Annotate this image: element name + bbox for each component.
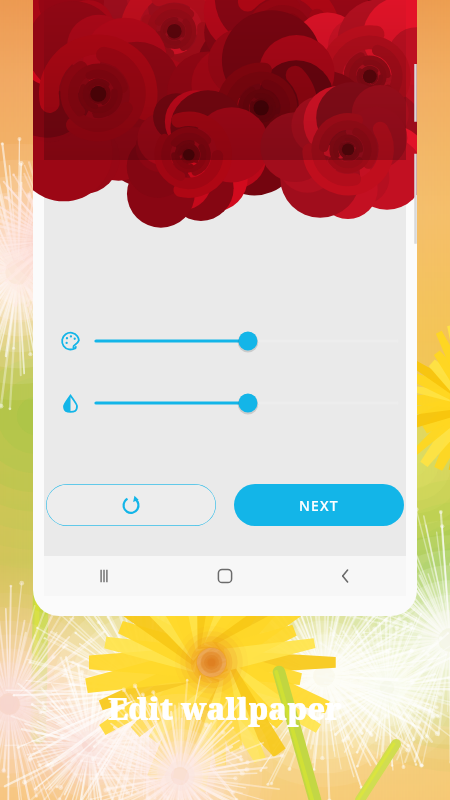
button[interactable]: Reset [46,484,216,526]
button[interactable]: Home [164,557,285,595]
button[interactable]: Color [53,324,87,358]
button[interactable]: Contrast [53,386,87,420]
button[interactable]: NEXT [234,484,404,526]
button[interactable]: Back [285,557,406,595]
staticText: NEXT [299,496,339,515]
button[interactable] [96,326,397,356]
button[interactable]: Recents [44,557,164,595]
button[interactable] [96,388,397,418]
staticText: Edit wallpaper [108,688,342,729]
